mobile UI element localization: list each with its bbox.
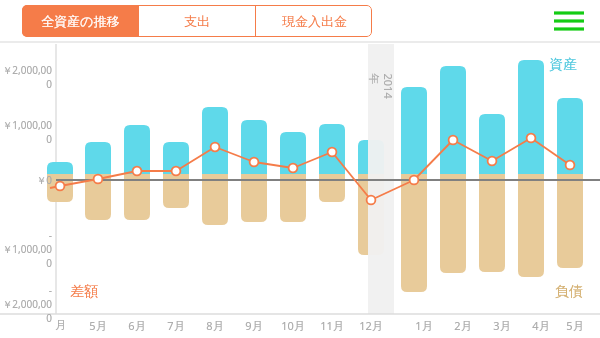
staticText: 9月 xyxy=(245,318,263,333)
staticText: 2月 xyxy=(454,318,472,333)
staticText: 11月 xyxy=(320,318,344,333)
staticText: 5月 xyxy=(566,318,584,333)
staticText: 資産 xyxy=(549,56,577,74)
staticText: 負債 xyxy=(555,283,583,301)
button[interactable]: Menu xyxy=(552,6,586,36)
staticText: 7月 xyxy=(167,318,185,333)
staticText: 12月 xyxy=(359,318,383,333)
button[interactable]: 支出 xyxy=(139,5,255,37)
staticText: 8月 xyxy=(206,318,224,333)
button[interactable]: 現金入出金 xyxy=(256,5,372,37)
staticText: 4月 xyxy=(532,318,550,333)
staticText: 5月 xyxy=(89,318,107,333)
staticText: ￥2,000,000 xyxy=(0,63,52,91)
staticText: 6月 xyxy=(128,318,146,333)
staticText: ￥0 xyxy=(36,173,52,187)
staticText: 2014年 xyxy=(366,73,395,103)
staticText: 1月 xyxy=(415,318,433,333)
staticText: 現金入出金 xyxy=(282,13,347,29)
staticText: -￥1,000,000 xyxy=(0,228,52,270)
staticText: 月 xyxy=(55,318,66,332)
staticText: 差額 xyxy=(70,283,98,301)
button[interactable]: 全資産の推移 xyxy=(22,5,138,37)
staticText: 支出 xyxy=(184,13,210,29)
staticText: 10月 xyxy=(281,318,305,333)
staticText: ￥1,000,000 xyxy=(0,118,52,146)
staticText: 3月 xyxy=(493,318,511,333)
staticText: -￥2,000,000 xyxy=(0,283,52,325)
staticText: 全資産の推移 xyxy=(41,13,120,29)
